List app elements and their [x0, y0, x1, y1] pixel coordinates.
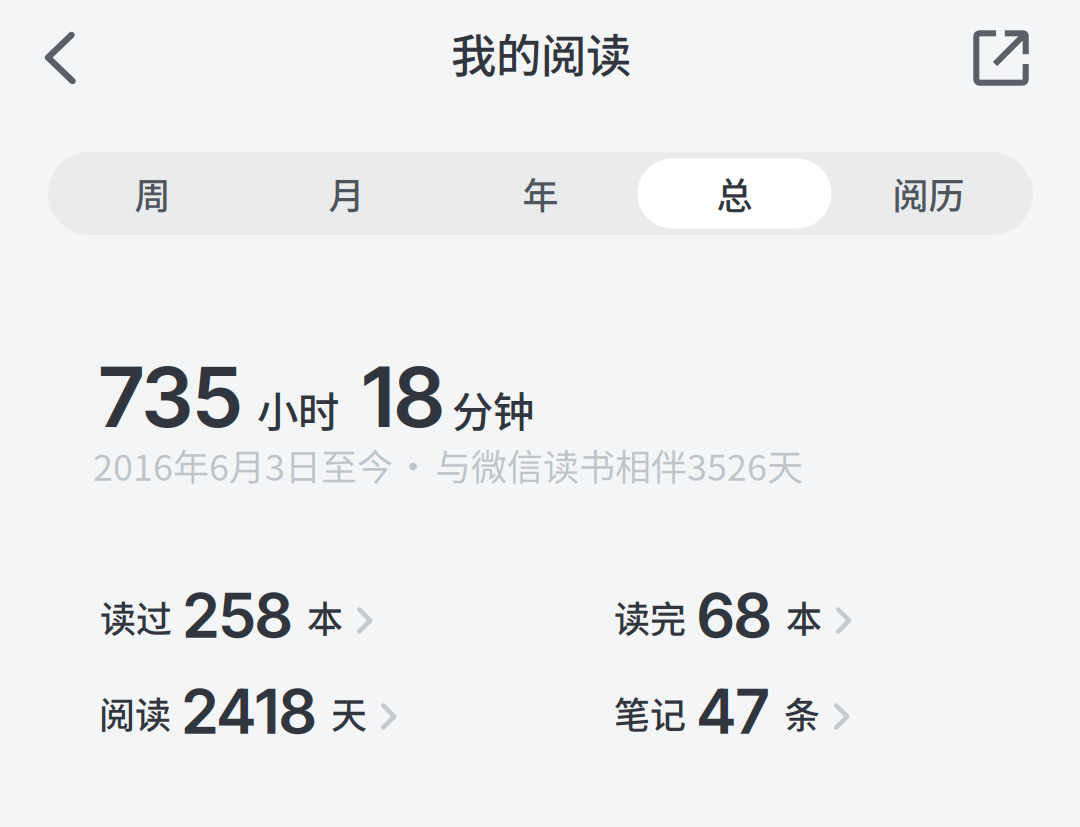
button[interactable]: 月 [249, 158, 443, 228]
staticText: 2016年6月3日至今 [93, 439, 393, 491]
button[interactable]: 年 [443, 158, 637, 228]
button[interactable]: Share [945, 2, 1057, 114]
staticText: 735 [99, 347, 242, 447]
staticText: · [395, 439, 431, 491]
staticText: 总 [716, 167, 752, 219]
staticText: 18 [362, 347, 444, 447]
staticText: 读过 [100, 591, 172, 643]
staticText: 47 [697, 674, 769, 749]
staticText: 阅读 [99, 687, 171, 739]
staticText: 周 [134, 167, 170, 219]
staticText: 本 [786, 591, 822, 643]
button[interactable]: 读完 [614, 582, 1074, 652]
staticText: 天 [331, 687, 367, 739]
staticText: 2418 [182, 674, 316, 749]
button[interactable]: 读过 [100, 582, 560, 652]
button[interactable]: 总 [637, 158, 831, 228]
staticText: 本 [307, 591, 343, 643]
button[interactable]: 笔记 [614, 678, 1074, 748]
staticText: 分钟 [452, 379, 534, 439]
button[interactable]: 阅历 [831, 158, 1025, 228]
button[interactable]: 阅读 [99, 678, 559, 748]
staticText: 条 [784, 687, 820, 739]
button[interactable]: Back [4, 2, 116, 114]
staticText: 读完 [614, 591, 686, 643]
staticText: 年 [522, 167, 558, 219]
staticText: 小时 [257, 379, 339, 439]
staticText: 与微信读书相伴3526天 [435, 439, 803, 491]
staticText: 阅历 [892, 167, 964, 219]
staticText: 68 [697, 578, 771, 653]
staticText: 我的阅读 [451, 20, 631, 86]
staticText: 笔记 [614, 687, 686, 739]
staticText: 258 [183, 578, 292, 653]
button[interactable]: 周 [55, 158, 249, 228]
staticText: 月 [328, 167, 364, 219]
